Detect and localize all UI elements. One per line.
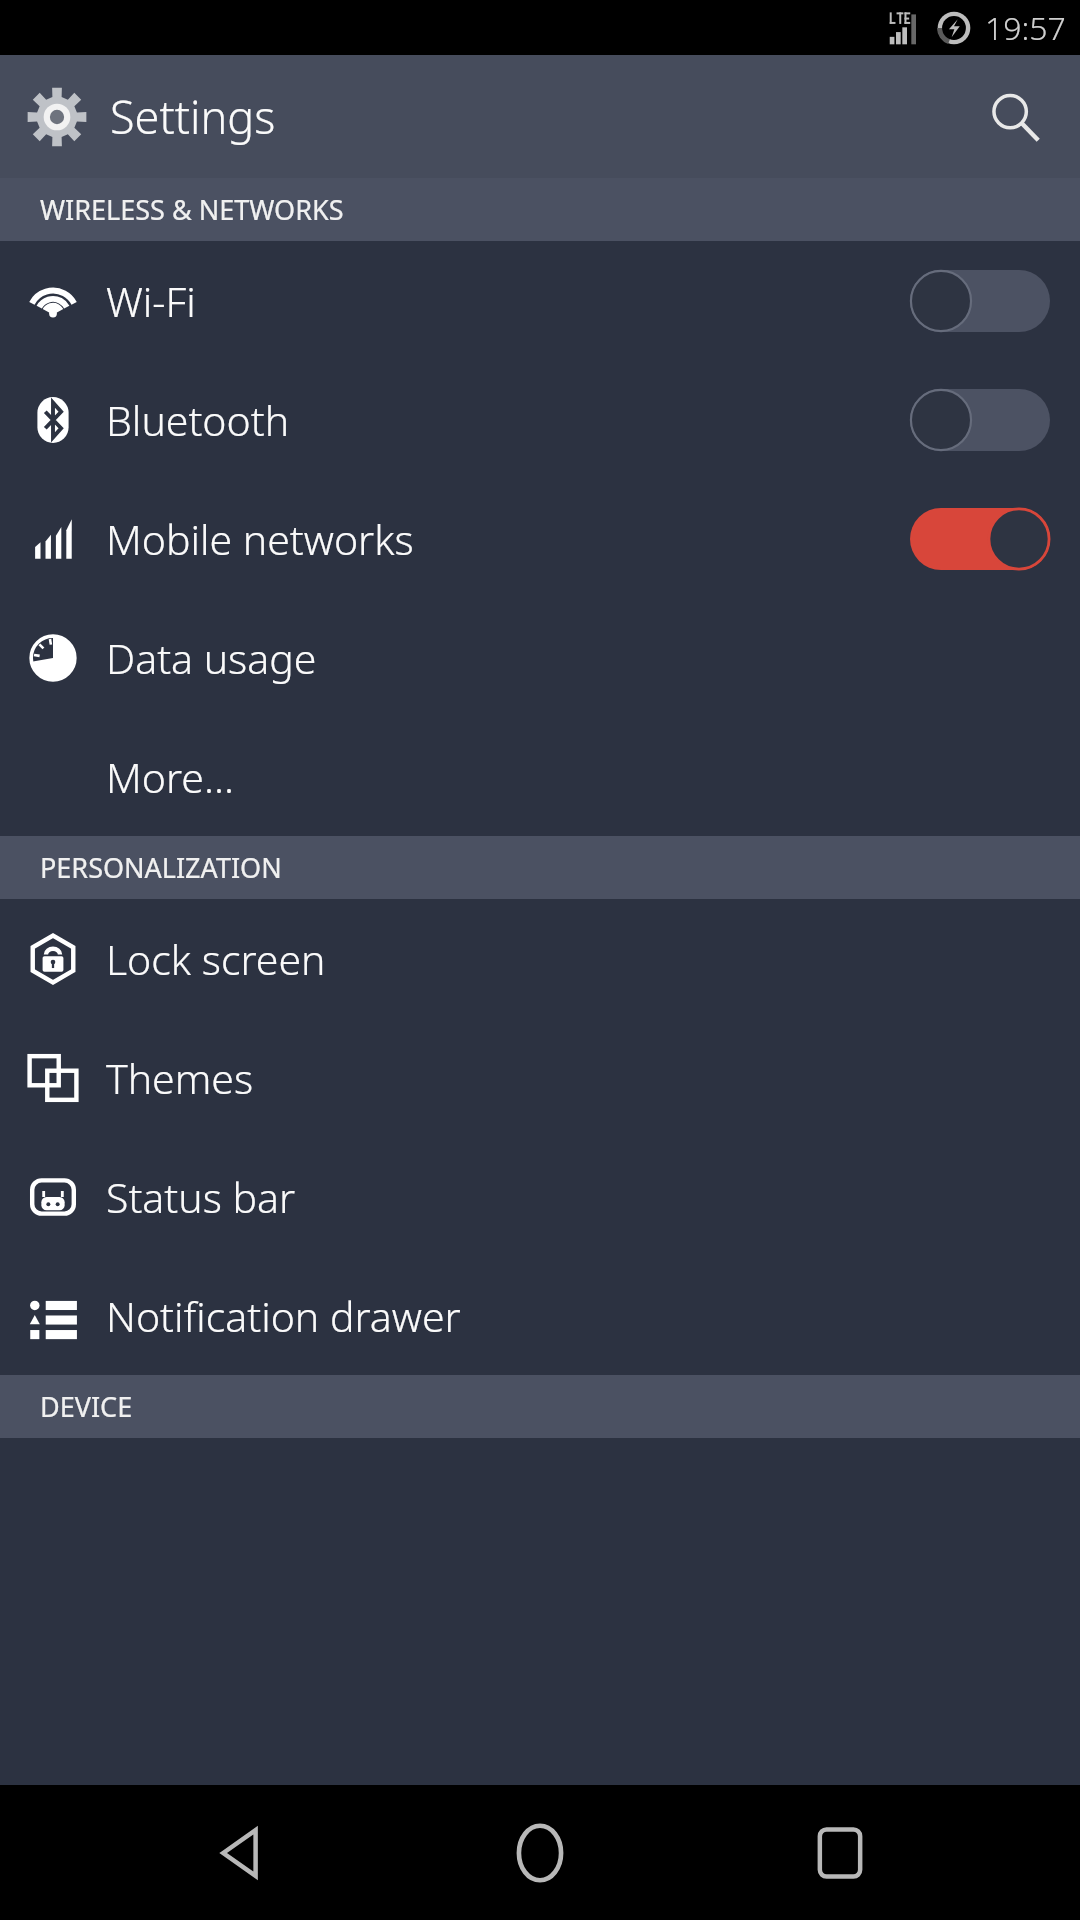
button[interactable]: Recent apps xyxy=(780,1793,900,1913)
button[interactable]: Notification drawer xyxy=(0,1256,1080,1375)
button[interactable]: More... xyxy=(0,717,1080,836)
button[interactable]: Data usage xyxy=(0,598,1080,717)
staticText: Data usage xyxy=(106,630,317,686)
button[interactable]: Toggle off xyxy=(910,270,1050,332)
staticText: 19:57 xyxy=(985,6,1066,50)
button[interactable]: Status bar xyxy=(0,1137,1080,1256)
button[interactable]: Themes xyxy=(0,1018,1080,1137)
button[interactable]: Home xyxy=(480,1793,600,1913)
staticText: Notification drawer xyxy=(106,1288,461,1344)
button[interactable]: Back xyxy=(180,1793,300,1913)
staticText: Wi-Fi xyxy=(106,273,196,329)
button[interactable]: Wi-Fi xyxy=(0,241,1080,360)
button[interactable]: Search xyxy=(976,78,1054,156)
staticText: Settings xyxy=(110,86,276,147)
staticText: Lock screen xyxy=(106,931,326,987)
staticText: DEVICE xyxy=(40,1388,133,1425)
button[interactable]: Toggle off xyxy=(910,389,1050,451)
staticText: Themes xyxy=(106,1050,254,1106)
button[interactable]: Mobile networks xyxy=(0,479,1080,598)
button[interactable]: Toggle on xyxy=(910,508,1050,570)
button[interactable]: Lock screen xyxy=(0,899,1080,1018)
button[interactable]: Bluetooth xyxy=(0,360,1080,479)
staticText: Bluetooth xyxy=(106,392,290,448)
staticText: Status bar xyxy=(106,1169,296,1225)
staticText: WIRELESS & NETWORKS xyxy=(40,191,344,228)
staticText: More... xyxy=(106,749,234,805)
staticText: Mobile networks xyxy=(106,511,414,567)
staticText: PERSONALIZATION xyxy=(40,849,282,886)
